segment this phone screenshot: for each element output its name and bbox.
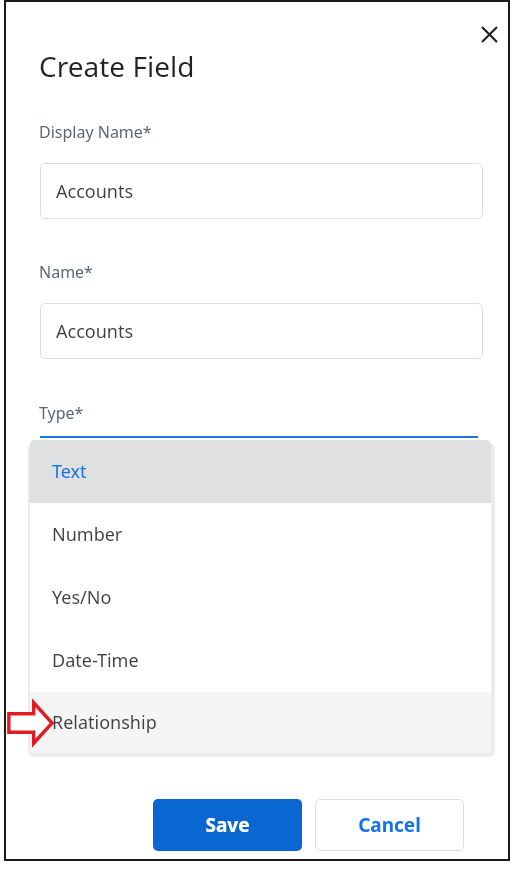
button[interactable]: Relationship: [30, 692, 491, 753]
staticText: Name*: [39, 261, 93, 283]
button[interactable]: Cancel: [315, 799, 464, 851]
staticText: Accounts: [56, 179, 134, 204]
button[interactable]: Save: [153, 799, 302, 851]
button[interactable]: Date-Time: [30, 629, 491, 692]
staticText: Cancel: [358, 812, 421, 838]
button[interactable]: Number: [30, 503, 491, 566]
staticText: Type*: [39, 402, 84, 424]
button[interactable]: Accounts: [40, 303, 483, 359]
staticText: Create Field: [39, 47, 195, 85]
staticText: Text: [52, 459, 87, 484]
staticText: Display Name*: [39, 121, 152, 143]
staticText: Date-Time: [52, 648, 139, 673]
button[interactable]: Text: [30, 440, 491, 503]
button[interactable]: Close: [470, 15, 508, 53]
button[interactable]: Yes/No: [30, 566, 491, 629]
button[interactable]: Accounts: [40, 163, 483, 219]
staticText: Accounts: [56, 319, 134, 344]
staticText: Yes/No: [52, 585, 112, 610]
staticText: Relationship: [52, 710, 157, 735]
staticText: Save: [205, 812, 250, 838]
staticText: Number: [52, 522, 123, 547]
